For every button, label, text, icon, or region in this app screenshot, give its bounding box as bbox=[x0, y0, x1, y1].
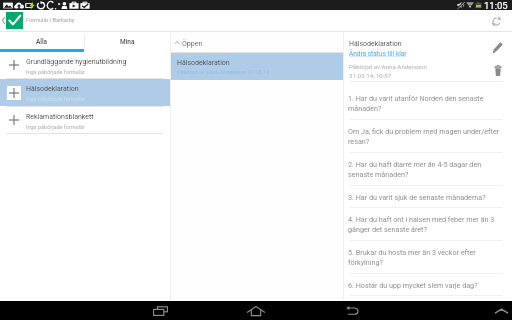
button[interactable]: Grundläggande hygienutbildning bbox=[0, 52, 170, 79]
staticText: 3. Har du varit sjuk de senaste månadern… bbox=[348, 193, 486, 201]
staticText: Inga påbörjade formulär bbox=[26, 124, 85, 130]
button[interactable]: Delete bbox=[490, 62, 506, 78]
staticText: Mina bbox=[120, 38, 135, 46]
staticText: Hälsodeklaration bbox=[349, 40, 402, 48]
button[interactable]: 2. Har du haft diarré mer än 4-5 dagar d… bbox=[344, 153, 512, 186]
staticText: 2. Har du haft diarré mer än 4-5 dagar d… bbox=[348, 160, 501, 179]
button[interactable]: Mina bbox=[85, 32, 170, 52]
button[interactable]: Up bbox=[0, 10, 6, 31]
button[interactable]: 6. Hostar du upp mycket slem varje dag? bbox=[344, 274, 512, 296]
staticText: 31.03.14, 10:57 bbox=[349, 72, 392, 79]
button[interactable]: 1. Har du varit utanför Norden den senas… bbox=[344, 82, 512, 120]
button[interactable]: 5. Brukar du hosta mer än 3 veckor efter… bbox=[344, 241, 512, 274]
button[interactable]: Home bbox=[242, 301, 270, 320]
staticText: Påbörjat av Anna Andersson 31.03.14 bbox=[177, 69, 270, 75]
staticText: 5. Brukar du hosta mer än 3 veckor efter… bbox=[348, 248, 501, 267]
staticText: Alla bbox=[36, 38, 48, 46]
staticText: Påbörjat av Anna Andersson bbox=[349, 63, 428, 70]
staticText: 6. Hostar du upp mycket slem varje dag? bbox=[348, 281, 478, 289]
staticText: Öppen bbox=[182, 40, 203, 48]
button[interactable]: 4. Har du haft ont i halsen med feber me… bbox=[344, 208, 512, 241]
staticText: 4. Har du haft ont i halsen med feber me… bbox=[348, 215, 501, 234]
staticText: Formulär i Barkarby bbox=[26, 17, 75, 24]
button[interactable]: Expand bbox=[492, 302, 510, 320]
staticText: Inga påbörjade formulär bbox=[26, 96, 85, 102]
button[interactable]: 3. Har du varit sjuk de senaste månadern… bbox=[344, 186, 512, 208]
staticText: Ändra status till klar bbox=[349, 50, 407, 58]
staticText: 11:05 bbox=[484, 0, 508, 10]
button[interactable]: Edit bbox=[490, 39, 506, 55]
button[interactable]: Hälsodeklaration bbox=[171, 53, 343, 80]
staticText: 1. Har du varit utanför Norden den senas… bbox=[348, 94, 501, 113]
button[interactable]: Recents bbox=[146, 301, 174, 320]
staticText: Hälsodeklaration bbox=[26, 85, 79, 93]
staticText: Reklamationsblankett bbox=[26, 113, 94, 121]
button[interactable]: Reklamationsblankett bbox=[0, 107, 170, 134]
button[interactable]: Back bbox=[338, 301, 366, 320]
staticText: Om Ja, fick du problem med magen under/e… bbox=[348, 127, 501, 146]
button[interactable]: Om Ja, fick du problem med magen under/e… bbox=[344, 120, 512, 153]
staticText: Grundläggande hygienutbildning bbox=[26, 58, 127, 66]
button[interactable]: Hälsodeklaration bbox=[0, 79, 170, 107]
button[interactable]: Refresh bbox=[488, 13, 504, 29]
staticText: Inga påbörjade formulär bbox=[26, 69, 85, 75]
button[interactable]: Alla bbox=[0, 32, 84, 52]
staticText: Hälsodeklaration bbox=[177, 59, 230, 67]
